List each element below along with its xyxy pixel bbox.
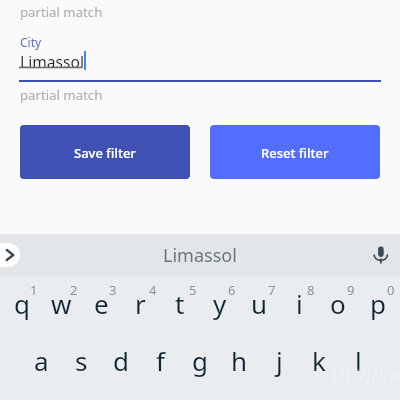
staticText: 3: [109, 281, 117, 299]
staticText: d: [113, 343, 129, 378]
staticText: 8: [307, 281, 315, 299]
button[interactable]: Voice input: [366, 240, 396, 270]
button[interactable]: i: [279, 276, 319, 330]
staticText: Limassol: [163, 243, 237, 268]
button[interactable]: a: [21, 333, 61, 387]
button[interactable]: s: [61, 333, 101, 387]
button[interactable]: j: [259, 333, 299, 387]
button[interactable]: g: [180, 333, 220, 387]
staticText: r: [135, 286, 146, 321]
button[interactable]: Reset filter: [210, 125, 380, 179]
staticText: a: [34, 343, 49, 378]
button[interactable]: o: [318, 276, 358, 330]
button[interactable]: h: [219, 333, 259, 387]
staticText: g: [192, 343, 208, 378]
button[interactable]: q: [2, 276, 42, 330]
button[interactable]: More suggestions: [0, 243, 20, 267]
staticText: t: [175, 286, 185, 321]
staticText: 7: [268, 281, 276, 299]
button[interactable]: u: [239, 276, 279, 330]
button[interactable]: Save filter: [20, 125, 190, 179]
staticText: Limassol: [20, 51, 84, 72]
staticText: h: [231, 343, 248, 378]
staticText: VIPlike: [330, 360, 400, 393]
staticText: u: [251, 286, 268, 321]
button[interactable]: k: [299, 333, 339, 387]
staticText: s: [75, 343, 88, 378]
button[interactable]: Limassol: [150, 240, 250, 270]
staticText: Save filter: [74, 144, 136, 162]
staticText: l: [355, 343, 362, 378]
staticText: y: [213, 286, 227, 321]
button[interactable]: r: [120, 276, 160, 330]
staticText: partial match: [20, 86, 103, 104]
staticText: f: [156, 343, 165, 378]
staticText: partial match: [20, 3, 103, 21]
staticText: i: [296, 286, 303, 321]
staticText: w: [51, 286, 72, 321]
staticText: 2: [70, 281, 78, 299]
staticText: City: [20, 34, 42, 50]
button[interactable]: e: [81, 276, 121, 330]
button[interactable]: w: [41, 276, 81, 330]
staticText: 5: [189, 281, 197, 299]
staticText: 9: [347, 281, 355, 299]
staticText: e: [94, 286, 109, 321]
button[interactable]: d: [101, 333, 141, 387]
button[interactable]: f: [140, 333, 180, 387]
button[interactable]: p: [358, 276, 398, 330]
staticText: j: [276, 343, 283, 378]
staticText: q: [14, 286, 30, 321]
staticText: Reset filter: [261, 144, 329, 162]
staticText: k: [312, 343, 326, 378]
staticText: 6: [228, 281, 236, 299]
staticText: 1: [30, 281, 38, 299]
staticText: o: [330, 286, 346, 321]
staticText: 4: [149, 281, 157, 299]
staticText: p: [370, 286, 386, 321]
button[interactable]: t: [160, 276, 200, 330]
button[interactable]: l: [338, 333, 378, 387]
staticText: 0: [387, 281, 395, 299]
button[interactable]: y: [200, 276, 240, 330]
